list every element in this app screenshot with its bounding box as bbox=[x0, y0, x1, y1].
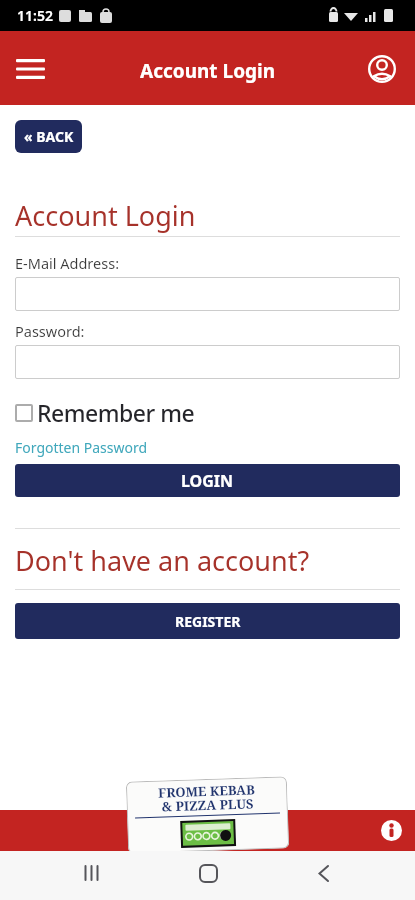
button[interactable]: Remember me bbox=[15, 397, 195, 428]
button[interactable] bbox=[68, 849, 116, 897]
button[interactable] bbox=[184, 849, 232, 897]
staticText: 11:52 bbox=[17, 6, 53, 25]
button[interactable]: REGISTER bbox=[15, 603, 400, 639]
staticText: & PIZZA PLUS bbox=[161, 794, 254, 816]
staticText: Account Login bbox=[15, 197, 196, 234]
button[interactable]: Forgotten Password bbox=[15, 438, 148, 457]
staticText: « BACK bbox=[24, 127, 74, 146]
button[interactable] bbox=[381, 820, 402, 841]
staticText: E-Mail Address: bbox=[15, 253, 120, 273]
button[interactable] bbox=[15, 277, 400, 311]
staticText: LOGIN bbox=[181, 470, 234, 492]
staticText: Password: bbox=[15, 321, 85, 341]
staticText: Don't have an account? bbox=[15, 542, 310, 579]
button[interactable] bbox=[299, 849, 347, 897]
button[interactable] bbox=[15, 345, 400, 379]
button[interactable] bbox=[362, 48, 402, 88]
button[interactable]: LOGIN bbox=[15, 464, 400, 497]
staticText: Remember me bbox=[37, 397, 195, 428]
button[interactable] bbox=[8, 46, 52, 90]
staticText: REGISTER bbox=[175, 612, 241, 631]
staticText: FROME KEBAB bbox=[158, 780, 255, 802]
button[interactable]: « BACK bbox=[15, 120, 82, 153]
button[interactable]: FROME KEBAB bbox=[126, 776, 289, 854]
staticText: Account Login bbox=[140, 58, 276, 84]
